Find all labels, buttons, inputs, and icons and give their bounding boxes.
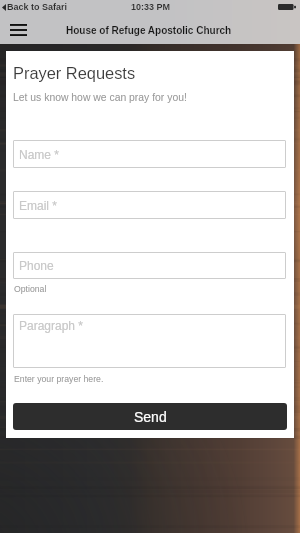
button[interactable]: Send bbox=[13, 403, 287, 430]
button[interactable]: Email * bbox=[13, 191, 286, 219]
staticText: Send bbox=[134, 409, 167, 425]
staticText: Paragraph * bbox=[19, 319, 84, 332]
button[interactable]: Phone bbox=[13, 252, 286, 279]
staticText: Enter your prayer here. bbox=[14, 374, 104, 384]
staticText: House of Refuge Apostolic Church bbox=[66, 25, 232, 36]
staticText: Back to Safari bbox=[7, 2, 68, 12]
button[interactable]: Open navigation menu bbox=[5, 17, 32, 41]
button[interactable]: Name * bbox=[13, 140, 286, 168]
staticText: Prayer Requests bbox=[13, 64, 136, 82]
button[interactable]: Paragraph * bbox=[13, 314, 286, 368]
staticText: Let us know how we can pray for you! bbox=[13, 92, 187, 104]
staticText: Name * bbox=[19, 148, 60, 161]
button[interactable]: Back to Safari bbox=[2, 2, 68, 12]
staticText: Phone bbox=[19, 259, 54, 272]
staticText: Email * bbox=[19, 199, 58, 212]
staticText: 10:33 PM bbox=[131, 2, 171, 12]
staticText: Optional bbox=[14, 284, 47, 294]
